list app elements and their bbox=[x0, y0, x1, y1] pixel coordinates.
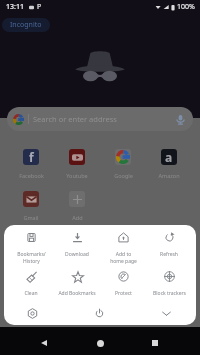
button[interactable]: Youtube bbox=[54, 149, 100, 179]
staticText: Youtube bbox=[66, 172, 88, 179]
button[interactable]: Incognito bbox=[2, 18, 50, 32]
staticText: a bbox=[165, 149, 173, 165]
staticText: 100% bbox=[177, 2, 195, 12]
staticText: 13:11 bbox=[6, 2, 24, 12]
button[interactable]: Home bbox=[89, 332, 111, 354]
button[interactable]: Search or enter address bbox=[7, 107, 193, 131]
staticText: Add to home page bbox=[110, 251, 137, 264]
staticText: Refresh bbox=[160, 251, 178, 258]
staticText: Download bbox=[65, 251, 89, 258]
staticText: Google bbox=[114, 172, 133, 179]
staticText: Protect bbox=[115, 290, 132, 297]
staticText: f bbox=[29, 149, 34, 165]
staticText: Clean bbox=[24, 290, 38, 297]
staticText: Facebook bbox=[19, 172, 44, 179]
button[interactable]: Clean bbox=[8, 270, 54, 297]
button[interactable]: f bbox=[8, 149, 54, 179]
button[interactable]: Download bbox=[54, 231, 100, 258]
button[interactable]: Refresh bbox=[146, 231, 192, 258]
staticText: P bbox=[37, 2, 42, 12]
staticText: Bookmarks/ History bbox=[17, 251, 46, 264]
staticText: Add Bookmarks bbox=[58, 290, 96, 297]
staticText: Amazon bbox=[158, 172, 180, 179]
button[interactable]: Settings bbox=[24, 305, 40, 321]
staticText: Add bbox=[72, 214, 83, 221]
button[interactable]: Exit bbox=[91, 305, 107, 321]
staticText: Block trackers bbox=[153, 290, 186, 297]
button[interactable]: Block trackers bbox=[146, 270, 192, 297]
button[interactable]: Add to home page bbox=[100, 231, 146, 264]
button[interactable]: Back bbox=[33, 332, 55, 354]
button[interactable]: a bbox=[146, 149, 192, 179]
staticText: Search or enter address bbox=[33, 114, 117, 124]
button[interactable]: Google bbox=[100, 149, 146, 179]
button[interactable]: Add bbox=[54, 191, 100, 221]
button[interactable]: Recent apps bbox=[144, 332, 166, 354]
staticText: Gmail bbox=[23, 214, 39, 221]
button[interactable]: Add Bookmarks bbox=[54, 270, 100, 297]
button[interactable]: Protect bbox=[100, 270, 146, 297]
button[interactable]: Collapse menu bbox=[158, 305, 174, 321]
button[interactable]: Gmail bbox=[8, 191, 54, 221]
button[interactable]: Bookmarks/ History bbox=[8, 231, 54, 264]
staticText: Incognito bbox=[10, 20, 42, 30]
